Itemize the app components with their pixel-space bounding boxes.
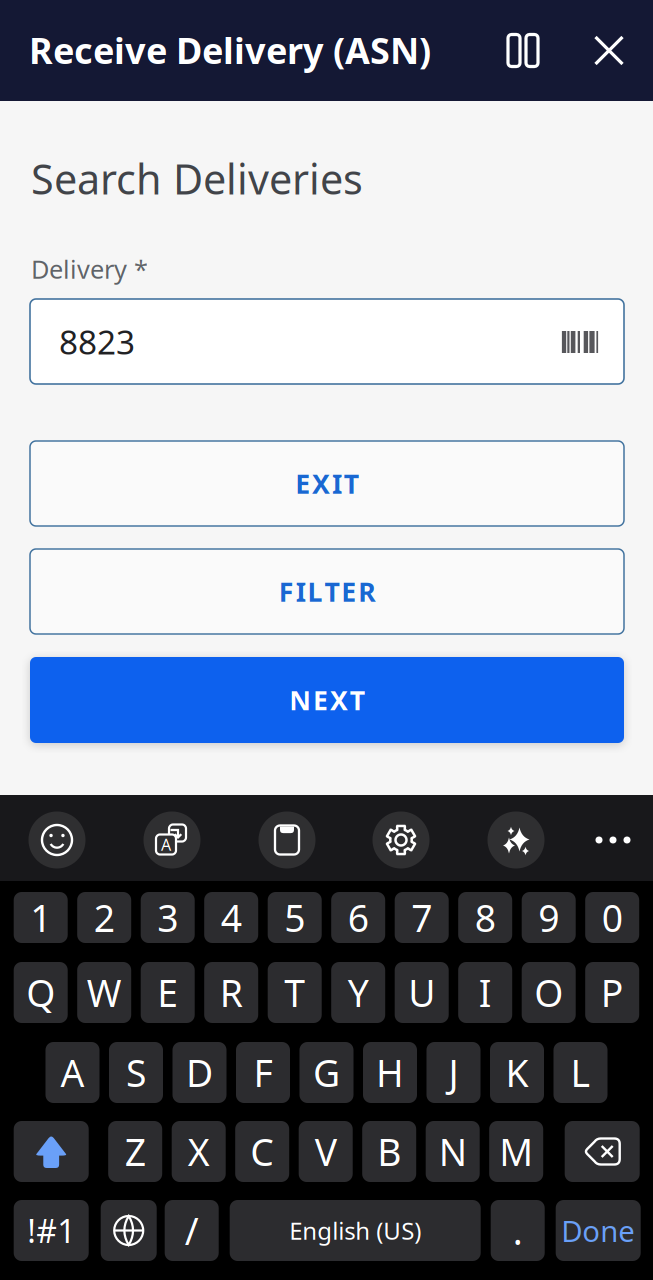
button[interactable]: Shift <box>14 1121 89 1182</box>
staticText: E <box>313 682 328 718</box>
staticText: 5 <box>284 893 305 942</box>
button[interactable]: A <box>45 1042 99 1103</box>
staticText: Receive Delivery (ASN) <box>29 26 431 74</box>
staticText: G <box>313 1048 340 1097</box>
button[interactable]: V <box>299 1121 353 1182</box>
staticText: A <box>161 834 171 855</box>
staticText: T <box>284 968 305 1017</box>
button[interactable]: Clipboard <box>258 811 315 868</box>
button[interactable]: N <box>426 1121 480 1182</box>
staticText: H <box>376 1048 404 1097</box>
button[interactable]: Emoji <box>28 811 85 868</box>
button[interactable]: J <box>426 1042 480 1103</box>
staticText: X <box>188 1127 210 1176</box>
button[interactable]: Q <box>14 962 68 1023</box>
button[interactable]: G <box>299 1042 353 1103</box>
staticText: 2 <box>94 893 115 942</box>
button[interactable]: N <box>30 657 624 743</box>
staticText: E <box>157 968 178 1017</box>
button[interactable]: R <box>204 962 258 1023</box>
staticText: E <box>295 466 310 501</box>
button[interactable]: . <box>491 1200 545 1261</box>
button[interactable]: / <box>165 1200 219 1261</box>
button[interactable]: Translate <box>143 811 200 868</box>
staticText: R <box>358 574 375 609</box>
button[interactable]: 0 <box>585 892 639 943</box>
button[interactable]: I <box>458 962 512 1023</box>
button[interactable]: X <box>172 1121 226 1182</box>
button[interactable]: F <box>236 1042 290 1103</box>
staticText: I <box>332 466 342 501</box>
button[interactable]: Y <box>331 962 385 1023</box>
staticText: T <box>324 574 339 609</box>
button[interactable]: English (US) <box>230 1200 481 1261</box>
button[interactable]: AI suggestions <box>487 811 544 868</box>
button[interactable]: More options <box>585 812 641 868</box>
staticText: A <box>60 1048 84 1097</box>
button[interactable]: 8823 <box>30 299 624 384</box>
button[interactable]: C <box>235 1121 289 1182</box>
button[interactable]: S <box>109 1042 163 1103</box>
staticText: X <box>312 466 330 501</box>
staticText: Done <box>561 1211 635 1250</box>
button[interactable]: W <box>77 962 131 1023</box>
button[interactable]: B <box>362 1121 416 1182</box>
button[interactable]: 7 <box>395 892 449 943</box>
button[interactable]: 6 <box>331 892 385 943</box>
staticText: U <box>408 968 435 1017</box>
button[interactable]: L <box>553 1042 607 1103</box>
button[interactable]: Done <box>556 1200 641 1261</box>
staticText: D <box>186 1048 213 1097</box>
staticText: I <box>479 968 492 1017</box>
button[interactable]: P <box>585 962 639 1023</box>
button[interactable]: Z <box>108 1121 162 1182</box>
staticText: . <box>513 1206 523 1255</box>
staticText: F <box>279 574 294 609</box>
button[interactable]: !#1 <box>14 1200 89 1261</box>
button[interactable]: E <box>30 441 624 526</box>
button[interactable]: 2 <box>77 892 131 943</box>
button[interactable]: Close <box>578 0 640 101</box>
button[interactable]: K <box>490 1042 544 1103</box>
staticText: / <box>185 1206 199 1255</box>
button[interactable]: H <box>363 1042 417 1103</box>
staticText: 7 <box>411 893 432 942</box>
staticText: S <box>126 1048 146 1097</box>
staticText: E <box>341 574 356 609</box>
staticText: Q <box>26 968 55 1017</box>
staticText: M <box>499 1127 533 1176</box>
button[interactable]: 4 <box>204 892 258 943</box>
button[interactable]: T <box>268 962 322 1023</box>
staticText: 3 <box>157 893 178 942</box>
staticText: W <box>87 968 122 1017</box>
button[interactable]: M <box>489 1121 543 1182</box>
button[interactable]: O <box>522 962 576 1023</box>
staticText: Z <box>125 1127 146 1176</box>
button[interactable]: E <box>141 962 195 1023</box>
staticText: B <box>377 1127 401 1176</box>
button[interactable]: Pause <box>492 0 554 101</box>
staticText: I <box>296 574 306 609</box>
staticText: 6 <box>348 893 369 942</box>
button[interactable]: 8 <box>458 892 512 943</box>
staticText: F <box>253 1048 272 1097</box>
staticText: 9 <box>538 893 559 942</box>
button[interactable]: Settings <box>372 811 429 868</box>
staticText: 8823 <box>59 319 135 364</box>
button[interactable]: 3 <box>141 892 195 943</box>
button[interactable]: 9 <box>522 892 576 943</box>
button[interactable]: F <box>30 549 624 634</box>
staticText: R <box>220 968 243 1017</box>
button[interactable]: D <box>172 1042 226 1103</box>
button[interactable]: Scan barcode <box>545 299 615 384</box>
staticText: 4 <box>221 893 242 942</box>
button[interactable]: 5 <box>268 892 322 943</box>
button[interactable]: Delete <box>565 1121 640 1182</box>
button[interactable]: 1 <box>14 892 68 943</box>
staticText: O <box>534 968 563 1017</box>
button[interactable]: Switch language <box>101 1200 157 1261</box>
button[interactable]: U <box>395 962 449 1023</box>
staticText: N <box>439 1127 467 1176</box>
staticText: C <box>250 1127 274 1176</box>
staticText: P <box>601 968 624 1017</box>
